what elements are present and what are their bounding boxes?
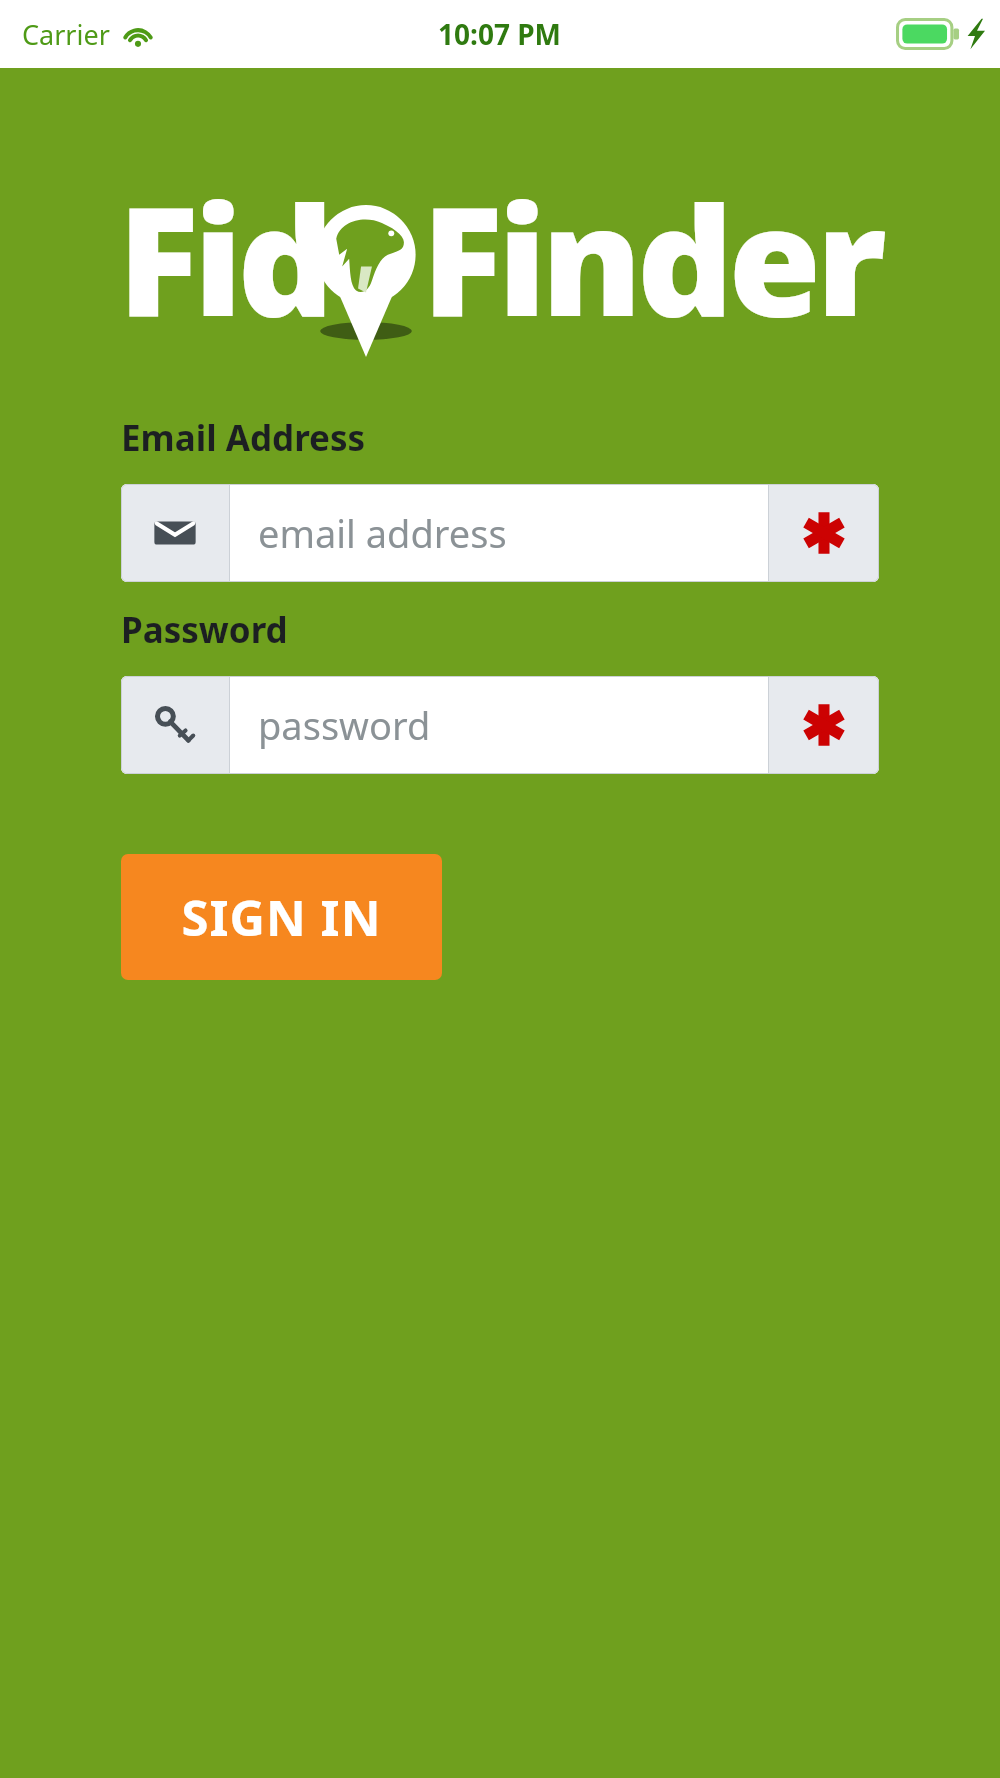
staticText: Finder <box>422 156 882 360</box>
button[interactable]: Password <box>121 676 879 774</box>
staticText: Email Address <box>121 414 366 462</box>
staticText: password <box>258 699 431 751</box>
other: Email <box>151 509 199 557</box>
staticText: Fid <box>118 156 330 360</box>
button[interactable]: Email <box>121 484 879 582</box>
staticText: email address <box>258 507 507 559</box>
staticText: Password <box>121 606 288 654</box>
button[interactable]: SIGN IN <box>121 854 442 980</box>
staticText: 10:07 PM <box>438 15 562 53</box>
staticText: SIGN IN <box>181 884 382 951</box>
other: Password <box>151 701 199 749</box>
staticText: Carrier <box>22 16 110 53</box>
